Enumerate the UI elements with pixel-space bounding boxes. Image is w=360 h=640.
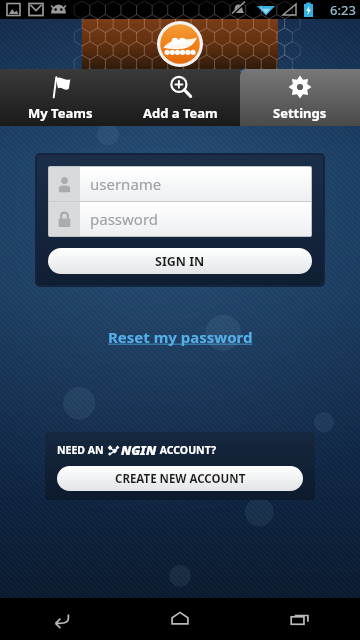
button[interactable]: Recent apps (240, 598, 360, 640)
staticText: Settings (273, 104, 327, 122)
button[interactable]: username (49, 167, 311, 201)
button[interactable]: Back (0, 598, 120, 640)
button[interactable]: Home (120, 598, 240, 640)
staticText: NEED AN (57, 443, 107, 457)
other: Add a Team (168, 74, 194, 100)
staticText: SIGN IN (155, 253, 205, 270)
button[interactable]: CREATE NEW ACCOUNT (57, 466, 303, 491)
other: Back (49, 608, 71, 630)
button[interactable]: password (49, 202, 311, 236)
button[interactable]: Reset my password (100, 323, 261, 351)
staticText: Add a Team (143, 104, 218, 122)
staticText: 6:23 (330, 1, 356, 19)
other: Settings (287, 74, 313, 100)
other: Recent apps (289, 608, 311, 630)
button[interactable]: Add a Team (120, 69, 240, 126)
staticText: My Teams (28, 104, 93, 122)
staticText: password (90, 209, 158, 229)
other: My Teams (48, 74, 74, 100)
staticText: ACCOUNT? (157, 443, 216, 457)
staticText: Reset my password (108, 327, 253, 347)
staticText: CREATE NEW ACCOUNT (115, 471, 246, 487)
staticText: username (90, 174, 162, 194)
button[interactable]: SIGN IN (48, 248, 312, 274)
staticText: NGIN (121, 441, 157, 459)
other: Home (169, 608, 191, 630)
button[interactable]: Settings (240, 69, 360, 126)
button[interactable]: My Teams (0, 69, 120, 126)
